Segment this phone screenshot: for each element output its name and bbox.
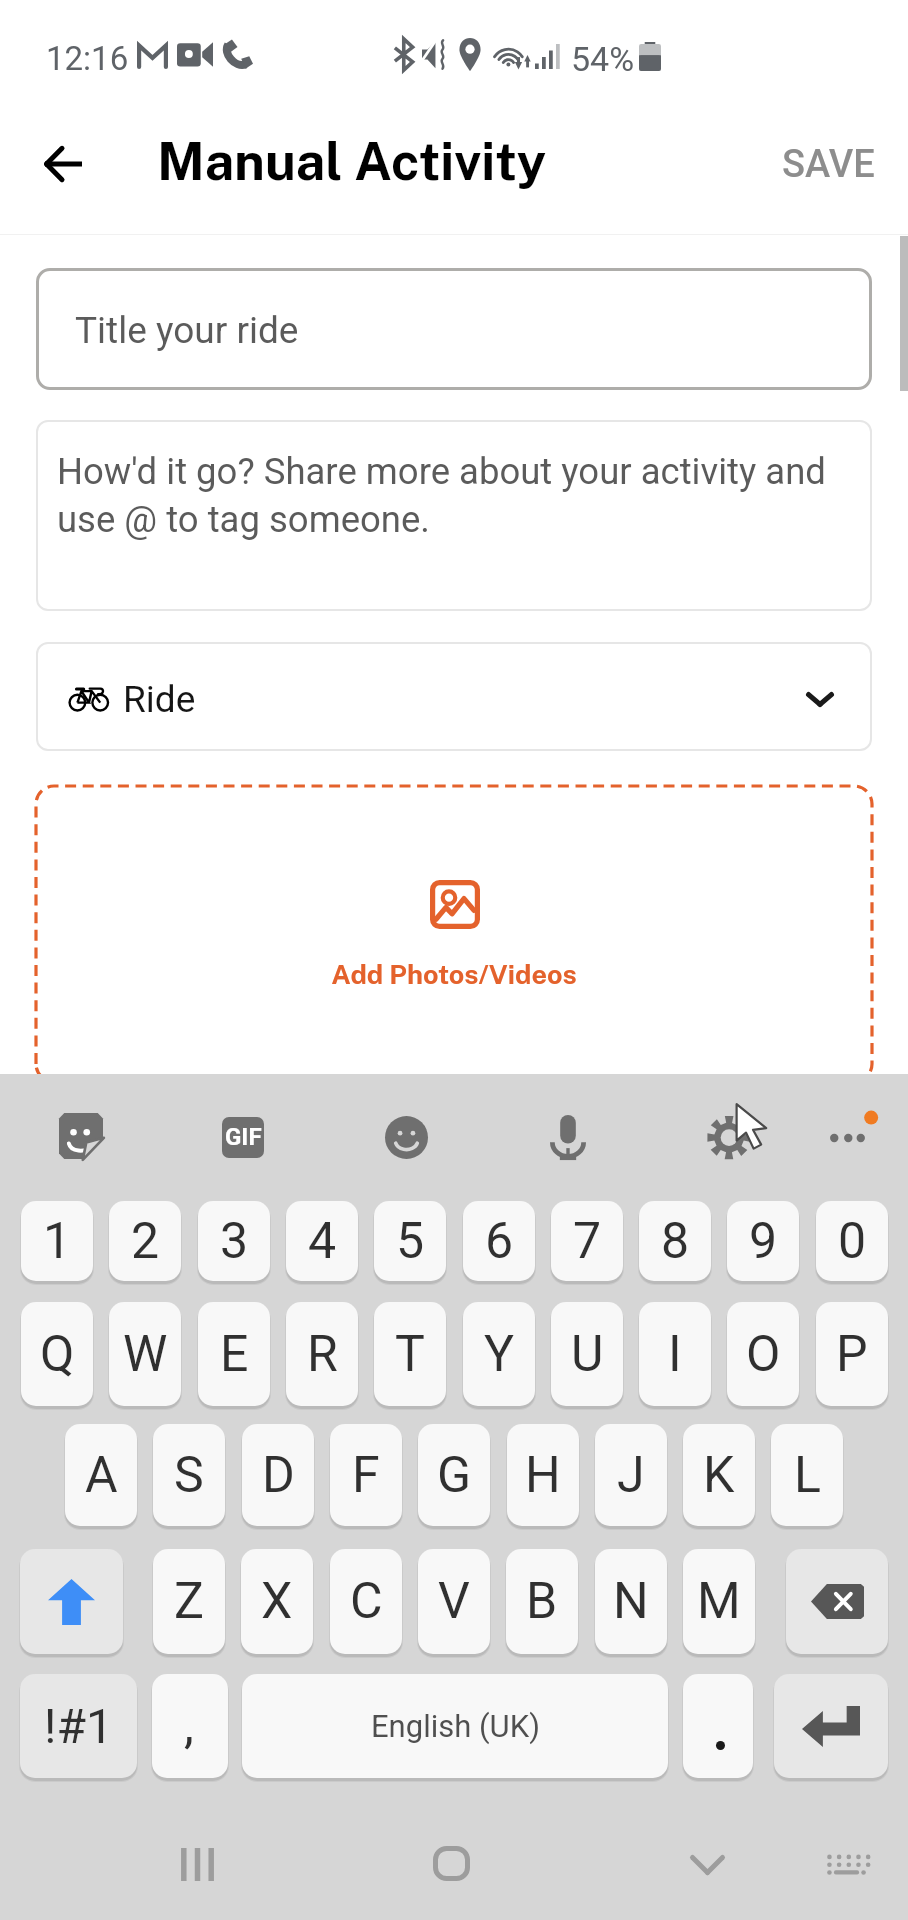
button[interactable]: O bbox=[727, 1302, 799, 1406]
staticText: P bbox=[836, 1325, 868, 1384]
button[interactable]: 0 bbox=[816, 1201, 888, 1281]
button[interactable]: Z bbox=[153, 1549, 225, 1654]
staticText: 2 bbox=[131, 1212, 160, 1271]
button[interactable]: 2 bbox=[109, 1201, 181, 1281]
staticText: Manual Activity bbox=[157, 131, 547, 192]
button[interactable]: M bbox=[683, 1549, 755, 1654]
button[interactable]: Y bbox=[463, 1302, 535, 1406]
staticText: K bbox=[703, 1446, 735, 1505]
button[interactable]: Recents bbox=[141, 1818, 254, 1911]
staticText: B bbox=[526, 1572, 558, 1631]
button[interactable]: Voice input bbox=[529, 1093, 607, 1183]
staticText: U bbox=[571, 1325, 604, 1384]
button[interactable]: A bbox=[65, 1424, 137, 1526]
button[interactable]: B bbox=[506, 1549, 578, 1654]
staticText: Ride bbox=[123, 678, 196, 721]
staticText: F bbox=[352, 1446, 380, 1505]
staticText: A bbox=[85, 1446, 118, 1505]
button[interactable]: H bbox=[507, 1424, 579, 1526]
button[interactable]: More bbox=[806, 1092, 902, 1166]
button[interactable]: W bbox=[109, 1302, 181, 1406]
button[interactable]: J bbox=[595, 1424, 667, 1526]
button[interactable]: 9 bbox=[727, 1201, 799, 1281]
staticText: 12:16 bbox=[46, 39, 129, 78]
staticText: M bbox=[697, 1572, 741, 1631]
staticText: V bbox=[438, 1572, 470, 1631]
staticText: 0 bbox=[838, 1212, 867, 1271]
staticText: N bbox=[613, 1572, 649, 1631]
staticText: W bbox=[123, 1325, 168, 1384]
button[interactable]: 1 bbox=[21, 1201, 93, 1281]
button[interactable]: C bbox=[330, 1549, 402, 1654]
staticText: G bbox=[437, 1446, 472, 1505]
button[interactable]: 5 bbox=[374, 1201, 446, 1281]
button[interactable]: Shift bbox=[20, 1549, 123, 1654]
button[interactable]: V bbox=[418, 1549, 490, 1654]
staticText: Add Photos/Videos bbox=[294, 958, 614, 990]
staticText: L bbox=[794, 1446, 821, 1505]
button[interactable]: D bbox=[242, 1424, 314, 1526]
staticText: Y bbox=[484, 1325, 515, 1384]
staticText: English (UK) bbox=[371, 1708, 540, 1744]
button[interactable]: P bbox=[816, 1302, 888, 1406]
button[interactable]: X bbox=[241, 1549, 313, 1654]
staticText: D bbox=[262, 1446, 295, 1505]
staticText: 9 bbox=[749, 1212, 778, 1271]
button[interactable]: SAVE bbox=[768, 132, 888, 196]
staticText: O bbox=[746, 1325, 781, 1384]
button[interactable]: 4 bbox=[286, 1201, 358, 1281]
button[interactable]: Home bbox=[393, 1816, 510, 1911]
staticText: 3 bbox=[220, 1212, 249, 1271]
button[interactable]: Switch keyboard bbox=[784, 1822, 908, 1908]
button[interactable]: Sticker bbox=[37, 1091, 125, 1181]
button[interactable]: R bbox=[286, 1302, 358, 1406]
button[interactable]: N bbox=[595, 1549, 667, 1654]
button[interactable]: Backspace bbox=[786, 1549, 888, 1654]
button[interactable]: , bbox=[152, 1674, 228, 1778]
staticText: 4 bbox=[308, 1212, 337, 1271]
button[interactable]: 8 bbox=[639, 1201, 711, 1281]
button[interactable]: Emoji bbox=[363, 1094, 450, 1181]
staticText: H bbox=[525, 1446, 561, 1505]
button[interactable]: K bbox=[683, 1424, 755, 1526]
button[interactable]: I bbox=[639, 1302, 711, 1406]
button[interactable] bbox=[683, 1674, 753, 1778]
button[interactable]: 3 bbox=[198, 1201, 270, 1281]
button[interactable]: T bbox=[374, 1302, 446, 1406]
button[interactable]: Settings bbox=[685, 1081, 792, 1182]
staticText: I bbox=[668, 1325, 682, 1384]
button[interactable]: How'd it go? Share more about your activ… bbox=[36, 420, 872, 611]
staticText: 1 bbox=[43, 1212, 72, 1271]
staticText: Z bbox=[174, 1572, 204, 1631]
button[interactable]: Back bbox=[18, 127, 104, 213]
button[interactable]: Hide keyboard bbox=[650, 1825, 765, 1905]
staticText: 6 bbox=[485, 1212, 514, 1271]
button[interactable]: E bbox=[198, 1302, 270, 1406]
button[interactable]: 6 bbox=[463, 1201, 535, 1281]
staticText: How'd it go? Share more about your activ… bbox=[57, 450, 857, 541]
button[interactable]: L bbox=[771, 1424, 843, 1526]
button[interactable]: !#1 bbox=[20, 1674, 137, 1778]
staticText: , bbox=[184, 1696, 194, 1755]
button[interactable]: 7 bbox=[551, 1201, 623, 1281]
staticText: 8 bbox=[661, 1212, 690, 1271]
button[interactable]: Enter bbox=[774, 1674, 888, 1778]
staticText: C bbox=[350, 1572, 383, 1631]
button[interactable]: Title your ride bbox=[36, 268, 872, 390]
button[interactable]: Ride bbox=[36, 642, 872, 751]
button[interactable]: F bbox=[330, 1424, 402, 1526]
staticText: R bbox=[307, 1325, 338, 1384]
staticText: 7 bbox=[573, 1212, 602, 1271]
button[interactable]: Q bbox=[21, 1302, 93, 1406]
button[interactable]: English (UK) bbox=[242, 1674, 668, 1778]
button[interactable]: G bbox=[418, 1424, 490, 1526]
button[interactable]: Add Photos/Videos bbox=[34, 784, 874, 1084]
staticText: J bbox=[617, 1446, 645, 1505]
button[interactable]: U bbox=[551, 1302, 623, 1406]
staticText: GIF bbox=[225, 1123, 262, 1151]
button[interactable]: S bbox=[153, 1424, 225, 1526]
button[interactable]: GIF bbox=[200, 1095, 286, 1180]
staticText: S bbox=[174, 1446, 204, 1505]
staticText: X bbox=[261, 1572, 293, 1631]
staticText: !#1 bbox=[44, 1698, 113, 1754]
